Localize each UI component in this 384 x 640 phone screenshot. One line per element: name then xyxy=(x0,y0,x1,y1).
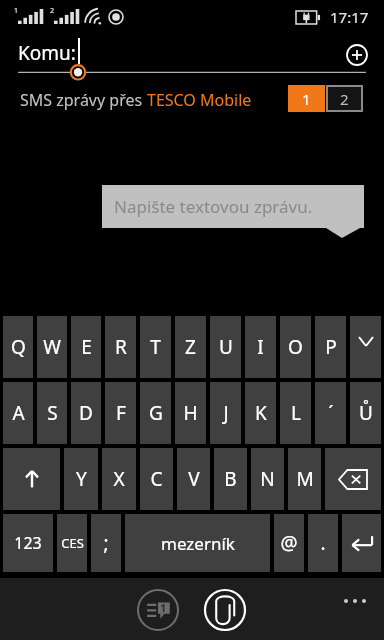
button[interactable]: C xyxy=(140,448,173,510)
staticText: P xyxy=(325,334,337,360)
staticText: TESCO Mobile xyxy=(147,89,252,111)
button[interactable]: Backspace xyxy=(325,448,381,510)
button[interactable]: P xyxy=(315,316,346,378)
staticText: L xyxy=(291,400,301,426)
staticText: F xyxy=(116,400,126,426)
button[interactable]: 2 xyxy=(326,85,363,112)
button[interactable]: More xyxy=(350,316,381,378)
staticText: H xyxy=(183,400,198,426)
button[interactable]: mezerník xyxy=(125,514,270,572)
staticText: N xyxy=(260,466,275,492)
staticText: Ů xyxy=(359,400,373,426)
button[interactable]: . xyxy=(308,514,338,572)
staticText: R xyxy=(115,334,127,360)
staticText: 1 xyxy=(160,600,167,615)
button[interactable]: Y xyxy=(64,448,98,510)
button[interactable]: Send message xyxy=(136,588,180,632)
staticText: G xyxy=(149,400,163,426)
staticText: Z xyxy=(185,334,196,360)
button[interactable]: ´ xyxy=(315,382,346,444)
staticText: CES xyxy=(61,534,84,552)
staticText: 2 xyxy=(340,89,349,109)
button[interactable]: B xyxy=(214,448,247,510)
button[interactable]: T xyxy=(140,316,171,378)
button[interactable]: E xyxy=(71,316,101,378)
staticText: A xyxy=(12,400,25,426)
button[interactable]: H xyxy=(175,382,206,444)
button[interactable]: Z xyxy=(175,316,206,378)
button[interactable]: V xyxy=(177,448,210,510)
staticText: J xyxy=(223,400,229,426)
staticText: S xyxy=(47,400,58,426)
button[interactable]: G xyxy=(140,382,171,444)
staticText: M xyxy=(296,466,314,492)
staticText: K xyxy=(255,400,267,426)
button[interactable]: I xyxy=(245,316,276,378)
button[interactable]: O xyxy=(280,316,311,378)
staticText: Komu: xyxy=(18,40,76,66)
button[interactable]: R xyxy=(105,316,136,378)
staticText: ; xyxy=(103,530,109,556)
button[interactable]: L xyxy=(280,382,311,444)
button[interactable]: More options xyxy=(336,586,380,616)
staticText: Y xyxy=(76,466,87,492)
button[interactable]: D xyxy=(71,382,101,444)
button[interactable]: Attach xyxy=(203,588,247,632)
staticText: Napište textovou zprávu. xyxy=(114,195,313,218)
staticText: @ xyxy=(280,530,298,556)
staticText: X xyxy=(113,466,125,492)
staticText: Q xyxy=(11,334,26,360)
button[interactable]: J xyxy=(210,382,241,444)
staticText: ´ xyxy=(328,400,334,426)
button[interactable]: A xyxy=(3,382,33,444)
button[interactable]: CES xyxy=(57,514,87,572)
staticText: mezerník xyxy=(161,532,235,555)
staticText: I xyxy=(257,334,264,360)
staticText: 123 xyxy=(14,532,42,554)
button[interactable]: Q xyxy=(3,316,33,378)
button[interactable]: ; xyxy=(91,514,121,572)
staticText: E xyxy=(81,334,92,360)
button[interactable]: N xyxy=(251,448,284,510)
staticText: T xyxy=(150,334,161,360)
button[interactable]: 1 xyxy=(288,85,325,112)
staticText: D xyxy=(79,400,93,426)
button[interactable]: W xyxy=(37,316,67,378)
staticText: C xyxy=(150,466,163,492)
staticText: U xyxy=(219,334,233,360)
staticText: W xyxy=(43,334,61,360)
staticText: 1 xyxy=(302,89,311,109)
button[interactable]: Ů xyxy=(350,382,381,444)
staticText: SMS zprávy přes xyxy=(20,89,147,111)
button[interactable]: @ xyxy=(274,514,304,572)
button[interactable]: Shift xyxy=(3,448,60,510)
staticText: . xyxy=(320,530,326,556)
button[interactable]: Napište textovou zprávu. xyxy=(102,185,364,228)
button[interactable]: F xyxy=(105,382,136,444)
button[interactable]: K xyxy=(245,382,276,444)
staticText: 17:17 xyxy=(330,7,369,27)
staticText: O xyxy=(288,334,303,360)
button[interactable]: U xyxy=(210,316,241,378)
staticText: 2 xyxy=(50,6,55,16)
button[interactable]: S xyxy=(37,382,67,444)
staticText: 1 xyxy=(14,6,19,16)
button[interactable]: Enter xyxy=(342,514,381,572)
button[interactable]: M xyxy=(288,448,321,510)
staticText: V xyxy=(188,466,200,492)
button[interactable]: 123 xyxy=(3,514,53,572)
staticText: B xyxy=(224,466,237,492)
button[interactable]: X xyxy=(102,448,136,510)
button[interactable]: Add recipient xyxy=(340,38,374,72)
